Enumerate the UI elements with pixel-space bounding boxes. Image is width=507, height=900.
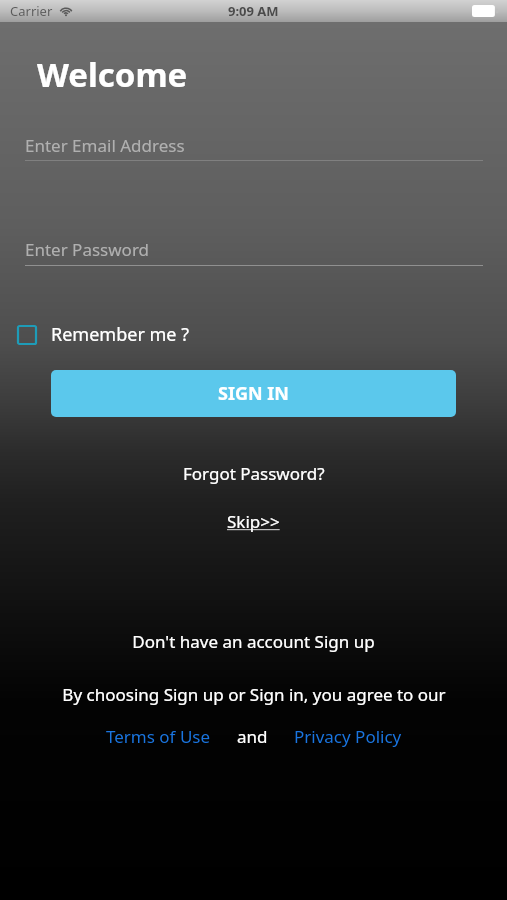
staticText: and (237, 725, 268, 748)
button[interactable]: Terms of Use (106, 725, 211, 748)
staticText: SIGN IN (218, 381, 289, 406)
staticText: Remember me ? (51, 322, 189, 347)
button[interactable]: Forgot Password? (183, 462, 325, 485)
staticText: Carrier (10, 2, 53, 20)
staticText: Privacy Policy (294, 725, 402, 748)
button[interactable]: SIGN IN (51, 370, 456, 417)
button[interactable]: Enter Password (25, 232, 483, 266)
other: Battery (472, 5, 498, 17)
button[interactable]: Skip>> (227, 510, 280, 533)
staticText: By choosing Sign up or Sign in, you agre… (62, 683, 446, 706)
staticText: Enter Password (25, 238, 150, 261)
other: Wi-Fi (59, 4, 73, 18)
staticText: Don't have an account Sign up (132, 630, 375, 653)
button[interactable]: Enter Email Address (25, 128, 483, 162)
staticText: Terms of Use (106, 725, 211, 748)
staticText: Welcome (37, 52, 188, 97)
button[interactable]: Don't have an account Sign up (132, 630, 375, 653)
staticText: Enter Email Address (25, 134, 185, 157)
staticText: 9:09 AM (228, 2, 279, 20)
staticText: Forgot Password? (183, 462, 325, 485)
staticText: Skip>> (227, 510, 280, 533)
button[interactable]: Privacy Policy (294, 725, 402, 748)
button[interactable]: Remember me ? (18, 322, 189, 347)
